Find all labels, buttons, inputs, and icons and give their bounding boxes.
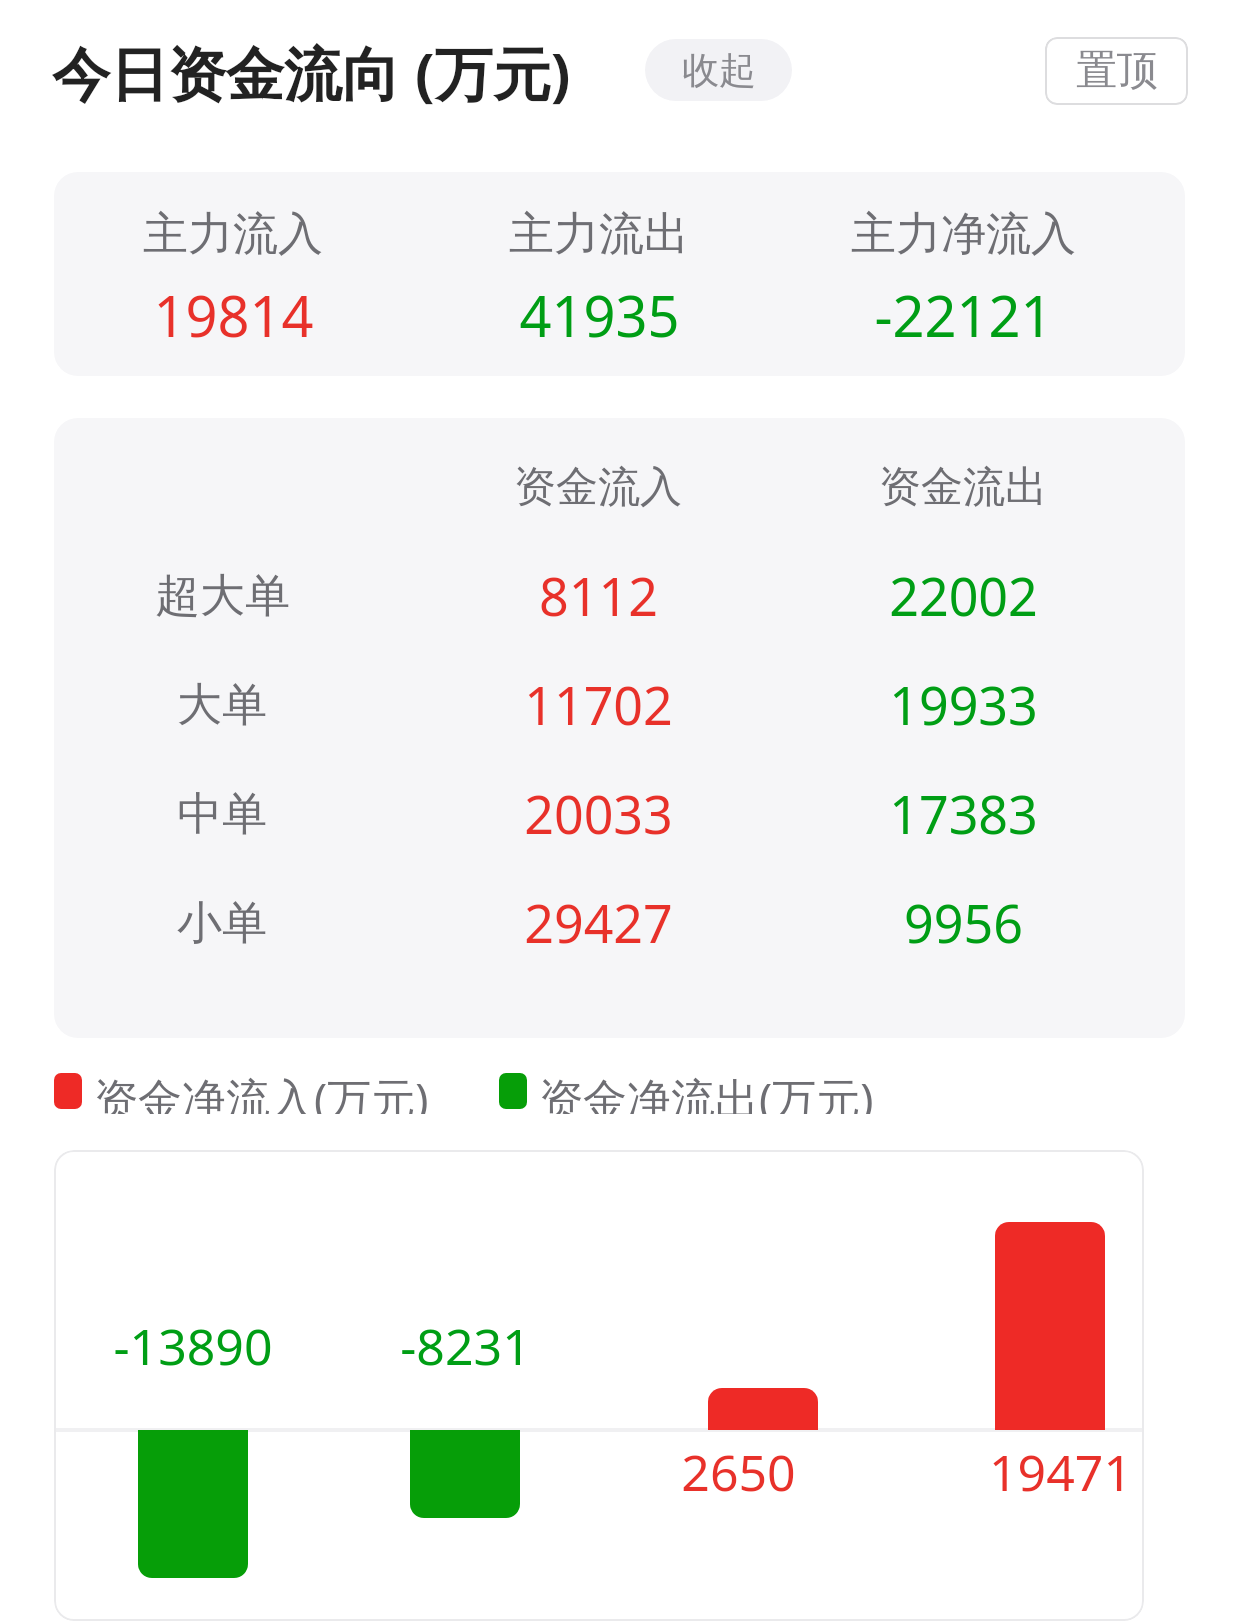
staticText: 9956 (904, 887, 1023, 958)
staticText: -8231 (400, 1312, 531, 1380)
staticText: 收起 (682, 47, 756, 94)
staticText: 主力流出 (509, 206, 689, 263)
staticText: 20033 (524, 778, 673, 849)
staticText: 主力净流入 (851, 206, 1076, 263)
staticText: 小单 (177, 895, 267, 952)
button[interactable]: 主力流入 (54, 172, 1185, 376)
staticText: 今日资金流向 (万元) (52, 33, 571, 112)
staticText: -13890 (113, 1312, 273, 1380)
staticText: 资金净流出(万元) (539, 1068, 874, 1114)
button[interactable]: 收起 (645, 39, 792, 101)
staticText: 大单 (177, 677, 267, 734)
staticText: 11702 (524, 669, 673, 740)
staticText: 资金流入 (514, 461, 682, 514)
staticText: 资金净流入(万元) (94, 1068, 429, 1114)
staticText: 2650 (681, 1438, 796, 1506)
staticText: 41935 (519, 277, 680, 353)
staticText: 置顶 (1076, 45, 1158, 97)
staticText: 19933 (889, 669, 1038, 740)
staticText: 主力流入 (143, 206, 323, 263)
staticText: 8112 (539, 560, 658, 631)
staticText: 17383 (889, 778, 1038, 849)
staticText: 资金流出 (879, 461, 1047, 514)
button[interactable]: 置顶 (1045, 37, 1188, 105)
button[interactable]: 资金流入 (54, 418, 1185, 1038)
staticText: -22121 (874, 277, 1053, 353)
staticText: 19814 (153, 277, 314, 353)
staticText: 29427 (524, 887, 673, 958)
staticText: 中单 (177, 786, 267, 843)
staticText: 22002 (889, 560, 1038, 631)
staticText: 超大单 (155, 568, 290, 625)
staticText: 19471 (989, 1438, 1132, 1506)
